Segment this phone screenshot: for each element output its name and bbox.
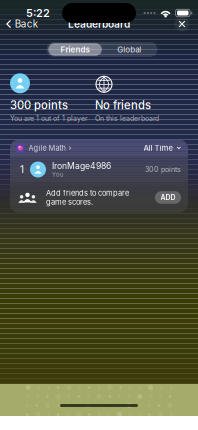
staticText: 5:22 <box>26 6 50 20</box>
staticText: 1 <box>20 163 24 176</box>
staticText: Back <box>15 18 38 30</box>
staticText: Friends <box>61 45 90 54</box>
staticText: No friends <box>95 98 151 112</box>
staticText: You <box>52 171 63 178</box>
staticText: Leaderboard <box>68 18 130 30</box>
staticText: All Time <box>144 143 174 153</box>
button[interactable]: All Time <box>144 139 188 156</box>
button[interactable]: ADD <box>155 191 188 204</box>
button[interactable]: Close <box>173 15 191 33</box>
staticText: IronMage4986 <box>52 161 111 171</box>
staticText: Agile Math <box>29 143 66 152</box>
staticText: You are 1 out of 1 player <box>10 114 88 123</box>
button[interactable]: Agile Math <box>10 139 72 156</box>
staticText: ADD <box>160 193 175 202</box>
staticText: On this leaderboard <box>95 114 159 123</box>
button[interactable]: Friends <box>47 42 102 57</box>
button[interactable]: Back <box>1 15 43 33</box>
staticText: Add friends to compare game scores. <box>46 188 129 207</box>
staticText: 300 points <box>10 98 68 112</box>
button[interactable]: Global <box>102 42 157 57</box>
staticText: Global <box>117 45 141 54</box>
button[interactable]: 1 <box>10 157 188 182</box>
staticText: 300 points <box>145 165 181 174</box>
